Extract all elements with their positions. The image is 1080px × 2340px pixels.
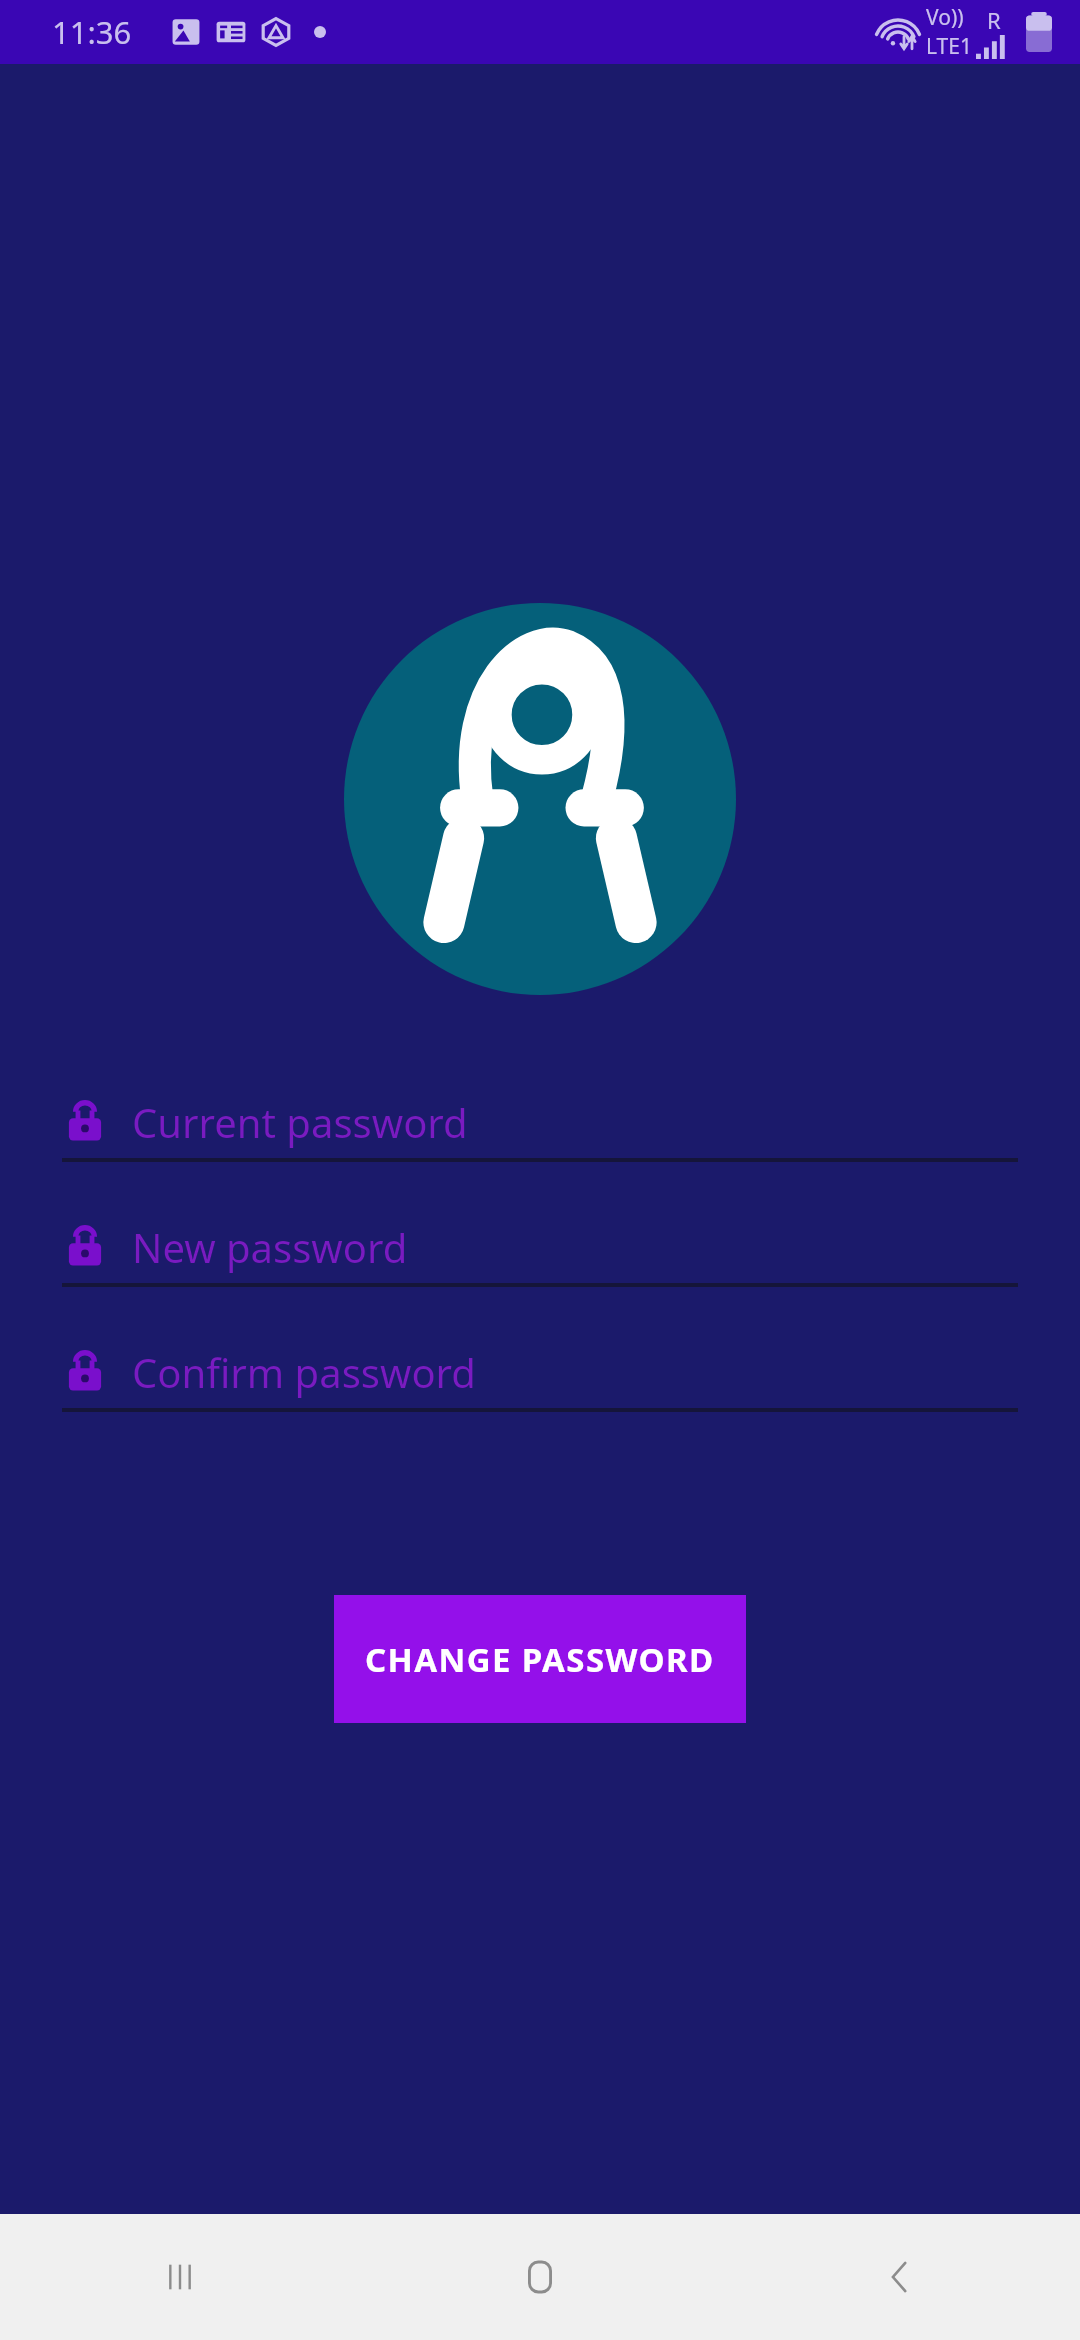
- button[interactable]: CHANGE PASSWORD: [334, 1595, 746, 1723]
- other: App logo: [344, 603, 736, 995]
- staticText: Confirm password: [132, 1345, 476, 1399]
- button[interactable]: Home: [360, 2214, 720, 2340]
- staticText: Current password: [132, 1095, 468, 1149]
- button[interactable]: Back: [720, 2214, 1080, 2340]
- staticText: R: [987, 5, 1001, 35]
- button[interactable]: Recents: [0, 2214, 360, 2340]
- staticText: 11:36: [52, 11, 132, 53]
- staticText: CHANGE PASSWORD: [365, 1637, 715, 1682]
- staticText: Vo)): [926, 3, 964, 32]
- staticText: New password: [132, 1220, 408, 1274]
- button[interactable]: Confirm password: [62, 1336, 1018, 1412]
- staticText: LTE1: [926, 32, 972, 61]
- button[interactable]: Current password: [62, 1086, 1018, 1162]
- button[interactable]: New password: [62, 1211, 1018, 1287]
